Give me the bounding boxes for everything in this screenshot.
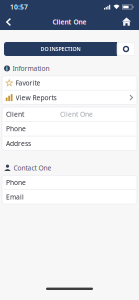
staticText: Email [6, 193, 24, 201]
button[interactable]: Back [0, 14, 11, 30]
staticText: Favorite [15, 78, 40, 87]
button[interactable]: DO INSPECTION [4, 42, 117, 56]
staticText: Address [6, 139, 31, 148]
button[interactable]: Phone [2, 175, 137, 189]
button[interactable]: Home [122, 14, 139, 30]
staticText: Phone [6, 178, 26, 187]
button[interactable]: Email [2, 190, 137, 204]
button[interactable]: Phone [2, 122, 137, 136]
staticText: Client [6, 110, 24, 118]
staticText: i [6, 65, 8, 72]
staticText: 10:57 [10, 3, 28, 11]
button[interactable]: View Reports [2, 91, 137, 105]
staticText: Information [12, 64, 49, 73]
staticText: Phone [6, 124, 26, 133]
staticText: View Reports [15, 93, 56, 102]
button[interactable]: Favorite [2, 76, 137, 90]
staticText: DO INSPECTION [40, 45, 80, 53]
staticText: Contact One [13, 163, 51, 172]
staticText: Client One [52, 18, 86, 26]
button[interactable]: Address [2, 136, 137, 150]
staticText: Client One [60, 110, 93, 118]
button[interactable]: Client [2, 107, 137, 121]
button[interactable]: Settings [117, 42, 135, 56]
